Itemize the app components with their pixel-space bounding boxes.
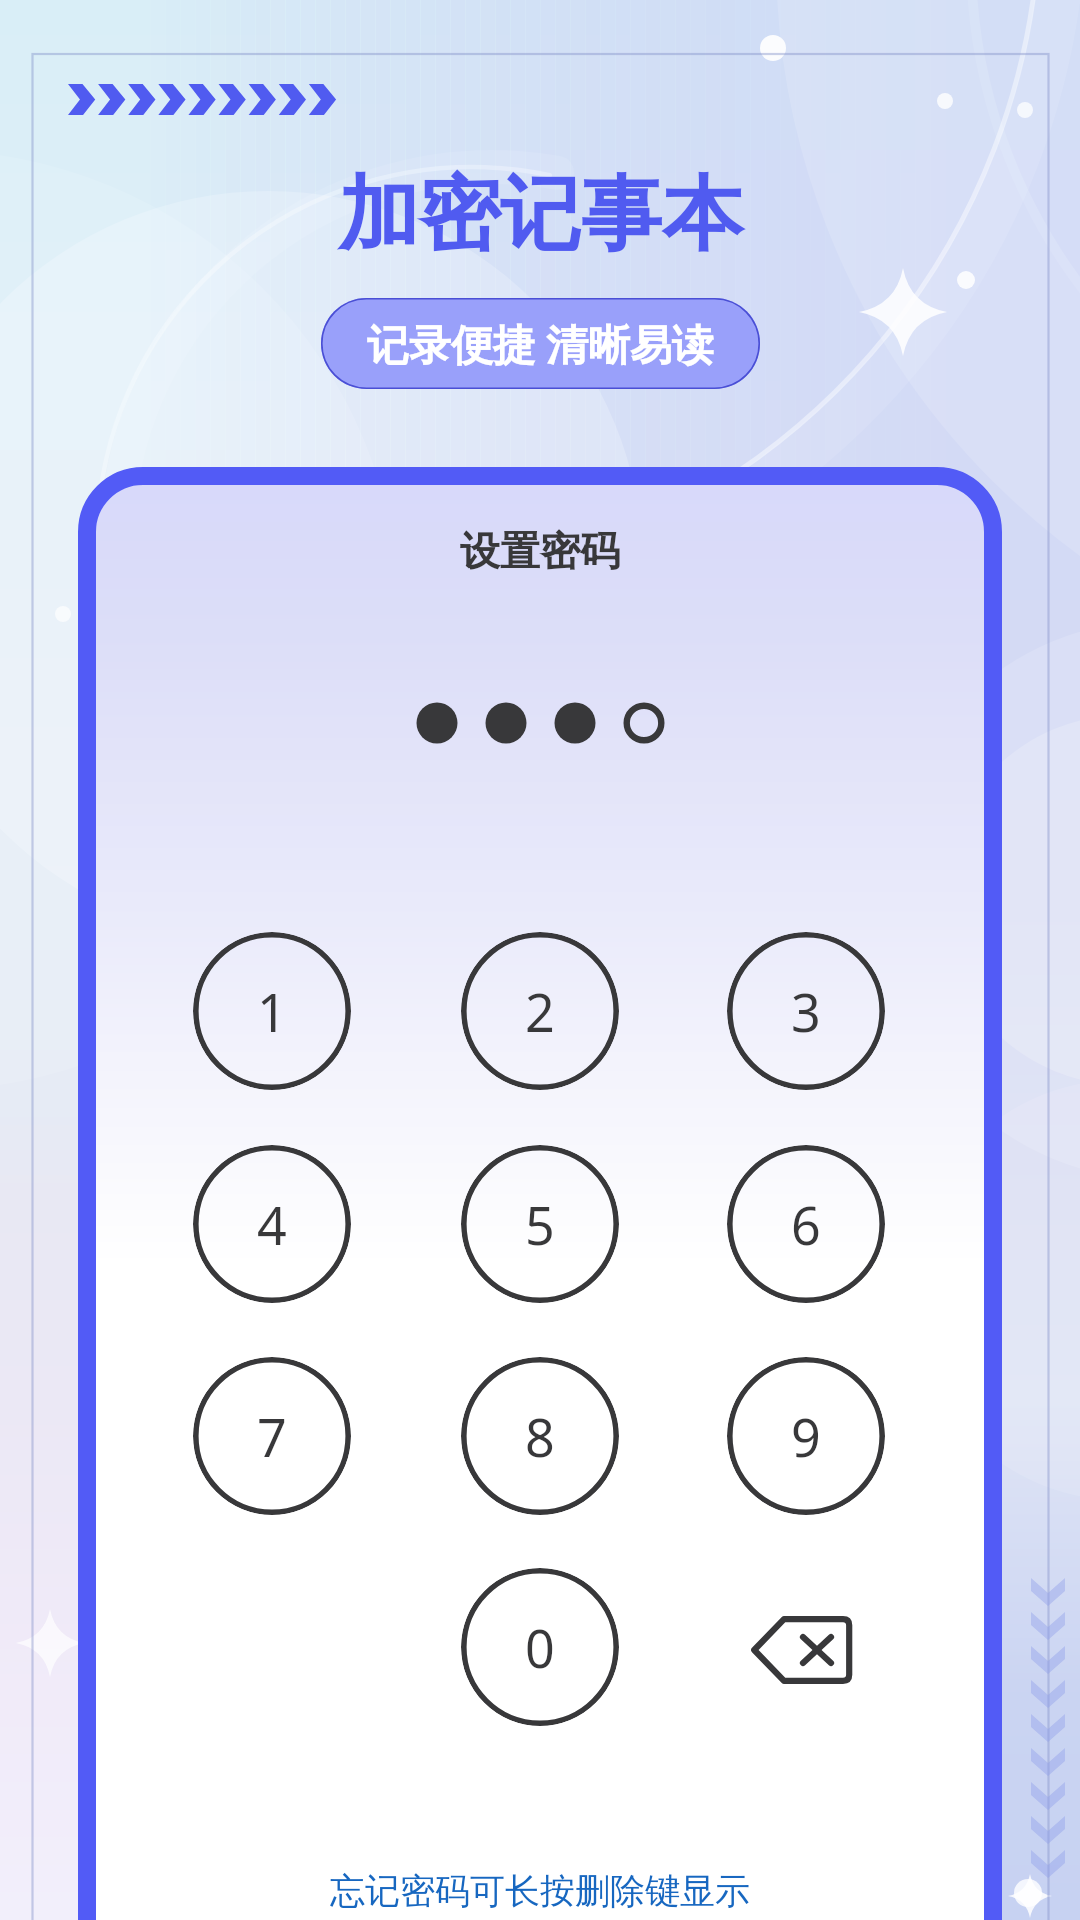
staticText: 4 [257, 1189, 287, 1260]
button[interactable]: 0 [461, 1568, 619, 1726]
staticText: 8 [525, 1401, 555, 1472]
staticText: 加密记事本 [338, 164, 743, 266]
staticText: 设置密码 [460, 526, 620, 576]
button[interactable]: 6 [727, 1145, 885, 1303]
staticText: 3 [791, 976, 821, 1047]
button[interactable]: 2 [461, 932, 619, 1090]
staticText: 0 [525, 1612, 555, 1683]
button[interactable]: 4 [193, 1145, 351, 1303]
button[interactable]: 1 [193, 932, 351, 1090]
button[interactable]: 记录便捷 清晰易读 [321, 298, 760, 389]
button[interactable]: 5 [461, 1145, 619, 1303]
staticText: 1 [257, 976, 287, 1047]
staticText: 2 [525, 976, 555, 1047]
staticText: 忘记密码可长按删除键显示 [330, 1869, 750, 1913]
staticText: 5 [525, 1189, 555, 1260]
staticText: 9 [791, 1401, 821, 1472]
button[interactable]: 7 [193, 1357, 351, 1515]
button[interactable]: 9 [727, 1357, 885, 1515]
staticText: 7 [257, 1401, 287, 1472]
button[interactable]: 3 [727, 932, 885, 1090]
staticText: 6 [791, 1189, 821, 1260]
staticText: 记录便捷 清晰易读 [367, 315, 714, 372]
button[interactable]: Delete [723, 1571, 881, 1729]
button[interactable]: 8 [461, 1357, 619, 1515]
